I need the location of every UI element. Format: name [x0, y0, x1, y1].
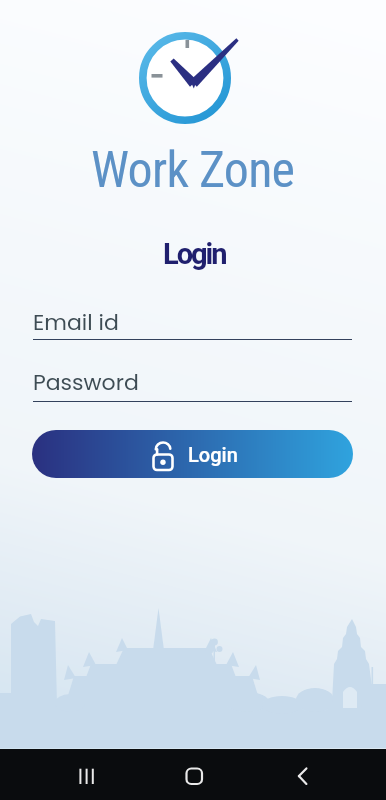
button[interactable]: Email id	[33, 307, 352, 340]
button[interactable]: Password	[33, 367, 352, 402]
button[interactable]: Login	[32, 430, 353, 478]
staticText: Work Zone	[91, 141, 295, 200]
button[interactable]	[272, 749, 332, 800]
button[interactable]	[164, 749, 224, 800]
button[interactable]	[57, 749, 117, 800]
staticText: Email id	[33, 307, 119, 338]
staticText: Password	[33, 367, 139, 398]
staticText: Login	[188, 443, 238, 466]
staticText: Login	[163, 237, 226, 271]
